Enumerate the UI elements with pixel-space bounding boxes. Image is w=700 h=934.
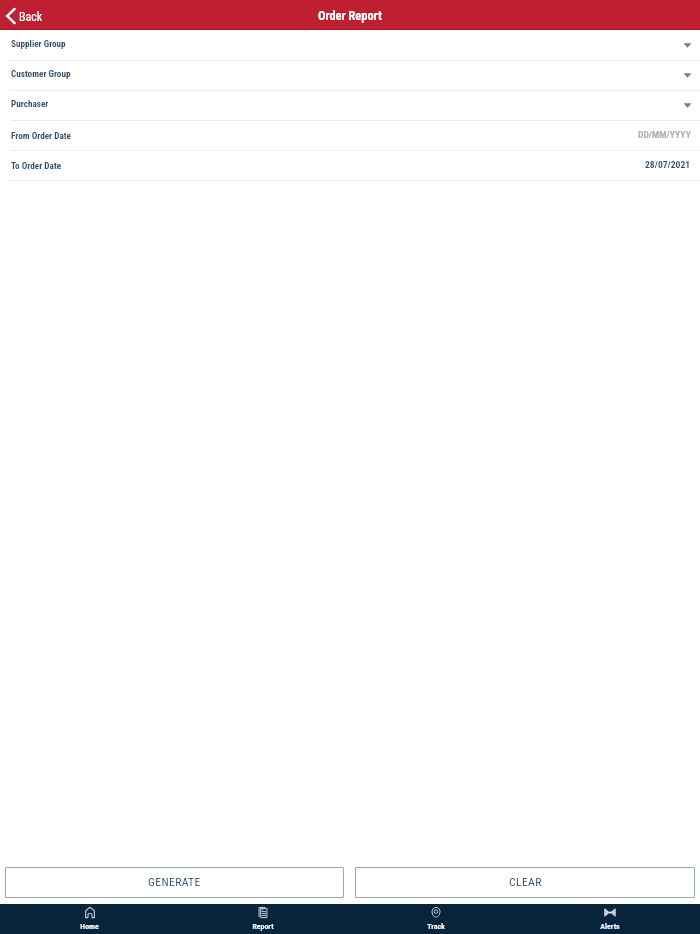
button[interactable]: Report	[176, 904, 349, 934]
button[interactable]: Alerts	[523, 904, 697, 934]
button[interactable]: CLEAR	[355, 867, 695, 898]
staticText: Home	[80, 922, 99, 931]
button[interactable]: From Order Date	[0, 121, 700, 151]
staticText: Report	[252, 922, 274, 931]
staticText: From Order Date	[11, 130, 71, 141]
staticText: Track	[427, 922, 445, 931]
staticText: DD/MM/YYYY	[638, 129, 691, 140]
staticText: To Order Date	[11, 160, 62, 171]
staticText: Back	[19, 10, 43, 24]
staticText: GENERATE	[148, 875, 201, 889]
button[interactable]: To Order Date	[0, 151, 700, 181]
button[interactable]: Back	[0, 0, 49, 29]
staticText: Customer Group	[11, 68, 71, 79]
staticText: 28/07/2021	[645, 159, 691, 170]
button[interactable]: Track	[349, 904, 523, 934]
staticText: Order Report	[318, 8, 382, 23]
button[interactable]: Supplier Group	[0, 31, 700, 61]
staticText: Purchaser	[11, 98, 49, 109]
staticText: Alerts	[600, 922, 620, 931]
button[interactable]: Home	[3, 904, 176, 934]
button[interactable]: Purchaser	[0, 91, 700, 121]
button[interactable]: GENERATE	[5, 867, 344, 898]
button[interactable]: Customer Group	[0, 61, 700, 91]
staticText: Supplier Group	[11, 38, 66, 49]
staticText: CLEAR	[509, 875, 542, 889]
